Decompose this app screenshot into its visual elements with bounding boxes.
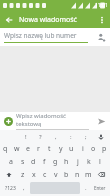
staticText: v: [54, 170, 58, 180]
staticText: o: [91, 144, 96, 154]
staticText: z: [21, 170, 25, 180]
button[interactable]: m: [83, 168, 94, 181]
staticText: ;: [85, 133, 87, 141]
button[interactable]: f: [39, 155, 50, 168]
button[interactable]: b: [61, 168, 72, 181]
button[interactable]: !: [19, 131, 33, 142]
button[interactable]: q: [0, 142, 11, 155]
staticText: y: [59, 144, 63, 154]
button[interactable]: Wpisz wiadomość tekstową: [16, 112, 89, 130]
staticText: g: [53, 157, 58, 167]
staticText: Wpisz wiadomość tekstową: [16, 112, 89, 128]
button[interactable]: d: [28, 155, 39, 168]
staticText: ,: [55, 133, 57, 141]
button[interactable]: Shift: [1, 168, 17, 181]
button[interactable]: g: [50, 155, 61, 168]
staticText: a: [9, 157, 13, 167]
button[interactable]: ?123: [1, 182, 19, 194]
button[interactable]: .: [81, 182, 91, 194]
button[interactable]: c: [39, 168, 50, 181]
staticText: 11:01: [95, 2, 108, 9]
button[interactable]: ,: [48, 131, 63, 142]
button[interactable]: Wstecz: [0, 11, 17, 28]
button[interactable]: z: [17, 168, 28, 181]
staticText: d: [31, 157, 36, 167]
staticText: u: [69, 144, 74, 154]
button[interactable]: ?: [33, 131, 48, 142]
button[interactable]: Dodaj kontakt: [92, 28, 110, 46]
staticText: q: [3, 144, 8, 154]
staticText: n: [75, 170, 80, 180]
button[interactable]: x: [28, 168, 39, 181]
button[interactable]: v: [50, 168, 61, 181]
staticText: t: [48, 144, 51, 154]
staticText: !: [25, 133, 27, 141]
button[interactable]: Wyślij: [92, 112, 110, 130]
button[interactable]: y: [55, 142, 66, 155]
staticText: h: [64, 157, 69, 167]
button[interactable]: r: [33, 142, 44, 155]
button[interactable]: ,: [19, 182, 29, 194]
button[interactable]: s: [17, 155, 28, 168]
button[interactable]: a: [5, 155, 17, 168]
staticText: .: [85, 184, 87, 192]
button[interactable]: Enter: [91, 182, 109, 194]
button[interactable]: t: [44, 142, 55, 155]
staticText: i: [82, 144, 84, 154]
staticText: w: [14, 144, 20, 154]
button[interactable]: i: [77, 142, 88, 155]
staticText: ?: [39, 133, 42, 141]
button[interactable]: :: [63, 131, 78, 142]
button[interactable]: h: [61, 155, 72, 168]
staticText: Enter: [94, 185, 106, 191]
button[interactable]: Backspace: [94, 168, 109, 181]
button[interactable]: k: [83, 155, 94, 168]
button[interactable]: e: [22, 142, 33, 155]
button[interactable]: o: [88, 142, 99, 155]
button[interactable]: Wpisz nazwę lub numer: [4, 31, 88, 43]
staticText: k: [87, 157, 91, 167]
button[interactable]: n: [72, 168, 83, 181]
button[interactable]: j: [72, 155, 83, 168]
button[interactable]: u: [66, 142, 77, 155]
button[interactable]: l: [94, 155, 105, 168]
button[interactable]: w: [11, 142, 22, 155]
staticText: m: [85, 170, 92, 180]
staticText: ?123: [5, 185, 16, 192]
staticText: e: [26, 144, 30, 154]
staticText: b: [64, 170, 69, 180]
button[interactable]: Więcej opcji: [93, 11, 110, 28]
staticText: ,: [23, 184, 25, 192]
staticText: s: [21, 157, 25, 167]
staticText: x: [32, 170, 36, 180]
button[interactable]: p: [99, 142, 110, 155]
button[interactable]: Wprowadzanie głosowe: [93, 131, 108, 142]
staticText: :: [70, 133, 72, 141]
staticText: p: [102, 144, 107, 154]
staticText: Nowa wiadomość: [19, 15, 93, 25]
button[interactable]: ;: [78, 131, 93, 142]
staticText: r: [37, 144, 40, 154]
staticText: c: [43, 170, 47, 180]
staticText: l: [99, 157, 101, 167]
staticText: f: [43, 157, 46, 167]
staticText: Wpisz nazwę lub numer: [4, 31, 77, 40]
staticText: j: [77, 157, 79, 167]
button[interactable]: Dodaj załącznik: [0, 113, 16, 129]
